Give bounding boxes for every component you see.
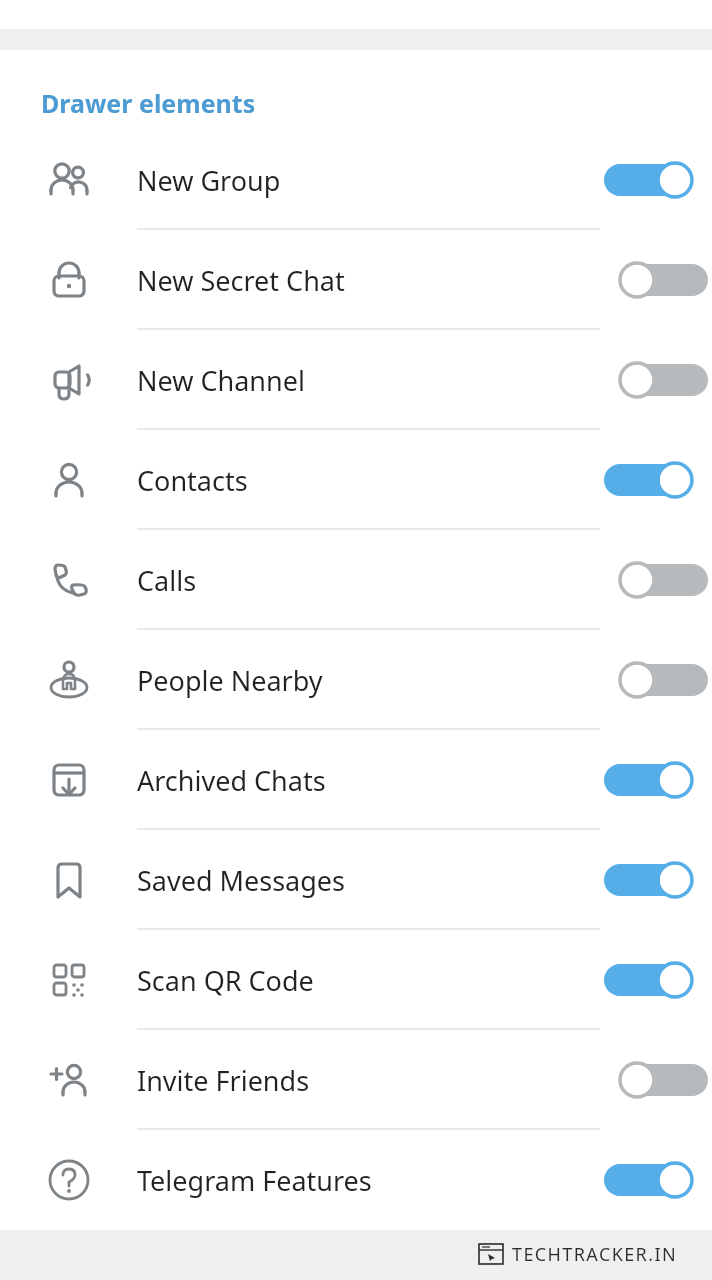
staticText: Saved Messages — [137, 862, 346, 899]
staticText: Telegram Features — [137, 1162, 372, 1199]
button[interactable]: Invite Friends — [0, 1030, 712, 1130]
other: Saved Messages — [45, 856, 93, 904]
other: Archived Chats — [45, 756, 93, 804]
staticText: Drawer elements — [41, 86, 256, 120]
staticText: New Channel — [137, 362, 305, 399]
button[interactable]: Calls — [0, 530, 712, 630]
button[interactable]: Saved Messages — [0, 830, 712, 930]
button[interactable]: Toggle New Group — [600, 130, 712, 230]
button[interactable]: Toggle People Nearby — [600, 630, 712, 730]
staticText: People Nearby — [137, 662, 323, 699]
staticText: Archived Chats — [137, 762, 326, 799]
button[interactable]: Scan QR Code — [0, 930, 712, 1030]
staticText: Contacts — [137, 462, 248, 499]
button[interactable]: Toggle New Secret Chat — [600, 230, 712, 330]
other: Telegram Features — [45, 1156, 93, 1204]
button[interactable]: People Nearby — [0, 630, 712, 730]
other: Calls — [45, 556, 93, 604]
staticText: New Group — [137, 162, 281, 199]
button[interactable]: Toggle Telegram Features — [600, 1130, 712, 1230]
button[interactable]: New Secret Chat — [0, 230, 712, 330]
button[interactable]: Telegram Features — [0, 1130, 712, 1230]
button[interactable]: Toggle Saved Messages — [600, 830, 712, 930]
button[interactable]: Toggle Contacts — [600, 430, 712, 530]
other: New Secret Chat — [45, 256, 93, 304]
other: New Group — [45, 156, 93, 204]
button[interactable]: Toggle Calls — [600, 530, 712, 630]
button[interactable]: Archived Chats — [0, 730, 712, 830]
button[interactable]: New Group — [0, 130, 712, 230]
staticText: Scan QR Code — [137, 962, 314, 999]
other: New Channel — [45, 356, 93, 404]
button[interactable]: Toggle Invite Friends — [600, 1030, 712, 1130]
other: Contacts — [45, 456, 93, 504]
other: Scan QR Code — [45, 956, 93, 1004]
button[interactable]: Toggle New Channel — [600, 330, 712, 430]
button[interactable]: Contacts — [0, 430, 712, 530]
button[interactable]: Toggle Archived Chats — [600, 730, 712, 830]
button[interactable]: Toggle Scan QR Code — [600, 930, 712, 1030]
staticText: TECHTRACKER.IN — [512, 1242, 678, 1267]
staticText: New Secret Chat — [137, 262, 345, 299]
other: People Nearby — [45, 656, 93, 704]
other: Invite Friends — [45, 1056, 93, 1104]
staticText: Invite Friends — [137, 1062, 310, 1099]
staticText: Calls — [137, 562, 197, 599]
button[interactable]: New Channel — [0, 330, 712, 430]
